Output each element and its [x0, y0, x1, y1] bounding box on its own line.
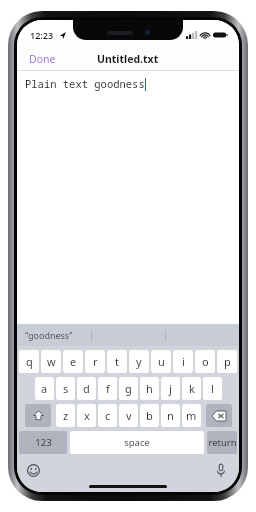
- staticText: j: [169, 381, 172, 396]
- staticText: e: [70, 354, 77, 369]
- staticText: k: [189, 381, 195, 396]
- staticText: space: [124, 436, 150, 449]
- staticText: Done: [29, 52, 56, 66]
- staticText: m: [186, 408, 197, 423]
- button[interactable]: w: [41, 350, 61, 373]
- staticText: 123: [35, 436, 52, 449]
- button[interactable]: Dictation: [213, 462, 229, 478]
- button[interactable]: 123: [19, 431, 67, 454]
- button[interactable]: l: [203, 377, 222, 400]
- staticText: y: [136, 354, 142, 369]
- button[interactable]: i: [173, 350, 193, 373]
- button[interactable]: Emoji: [25, 462, 41, 478]
- staticText: “goodness”: [25, 329, 73, 341]
- staticText: r: [93, 354, 98, 369]
- button[interactable]: q: [19, 350, 39, 373]
- staticText: u: [158, 354, 165, 369]
- button[interactable]: o: [195, 350, 215, 373]
- button[interactable]: y: [129, 350, 149, 373]
- button[interactable]: x: [77, 404, 96, 427]
- staticText: f: [106, 381, 110, 396]
- button[interactable]: a: [35, 377, 54, 400]
- button[interactable]: f: [98, 377, 117, 400]
- staticText: return: [208, 436, 237, 449]
- staticText: p: [224, 354, 231, 369]
- staticText: i: [182, 354, 185, 369]
- staticText: 12:23: [30, 29, 54, 41]
- button[interactable]: n: [161, 404, 180, 427]
- staticText: s: [63, 381, 69, 396]
- staticText: v: [126, 408, 132, 423]
- staticText: a: [41, 381, 48, 396]
- button[interactable]: j: [161, 377, 180, 400]
- button[interactable]: z: [56, 404, 75, 427]
- button[interactable]: return: [207, 431, 237, 454]
- button[interactable]: k: [182, 377, 201, 400]
- button[interactable]: Backspace: [206, 404, 232, 427]
- staticText: d: [83, 381, 90, 396]
- staticText: t: [115, 354, 119, 369]
- staticText: z: [63, 408, 69, 423]
- button[interactable]: Shift: [25, 404, 51, 427]
- button[interactable]: Done: [23, 49, 62, 69]
- button[interactable]: m: [182, 404, 201, 427]
- button[interactable]: v: [119, 404, 138, 427]
- staticText: g: [125, 381, 132, 396]
- staticText: n: [167, 408, 174, 423]
- button[interactable]: c: [98, 404, 117, 427]
- staticText: c: [105, 408, 111, 423]
- button[interactable]: b: [140, 404, 159, 427]
- button[interactable]: d: [77, 377, 96, 400]
- staticText: q: [26, 354, 33, 369]
- button[interactable]: s: [56, 377, 75, 400]
- staticText: o: [202, 354, 209, 369]
- button[interactable]: g: [119, 377, 138, 400]
- button[interactable]: e: [63, 350, 83, 373]
- button[interactable]: u: [151, 350, 171, 373]
- staticText: x: [84, 408, 90, 423]
- staticText: b: [146, 408, 153, 423]
- button[interactable]: p: [217, 350, 237, 373]
- button[interactable]: t: [107, 350, 127, 373]
- button[interactable]: r: [85, 350, 105, 373]
- staticText: w: [47, 354, 56, 369]
- staticText: l: [211, 381, 214, 396]
- button[interactable]: h: [140, 377, 159, 400]
- button[interactable]: “goodness”: [17, 324, 91, 346]
- staticText: Untitled.txt: [97, 52, 159, 66]
- staticText: Plain text goodness: [25, 77, 145, 91]
- staticText: h: [146, 381, 153, 396]
- button[interactable]: space: [70, 431, 204, 454]
